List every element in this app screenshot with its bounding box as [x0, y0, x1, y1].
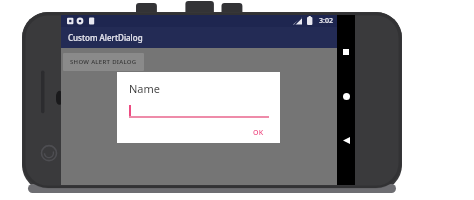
- button[interactable]: OK: [248, 125, 269, 141]
- button[interactable]: SHOW ALERT DIALOG: [63, 53, 144, 71]
- staticText: SHOW ALERT DIALOG: [70, 58, 137, 66]
- button[interactable]: Home: [337, 87, 355, 105]
- staticText: OK: [253, 128, 264, 138]
- button[interactable]: Recent apps: [337, 43, 355, 61]
- button[interactable]: Back: [337, 131, 355, 149]
- staticText: 3:02: [319, 16, 333, 26]
- staticText: Custom AlertDialog: [68, 32, 143, 43]
- staticText: Name: [129, 81, 161, 96]
